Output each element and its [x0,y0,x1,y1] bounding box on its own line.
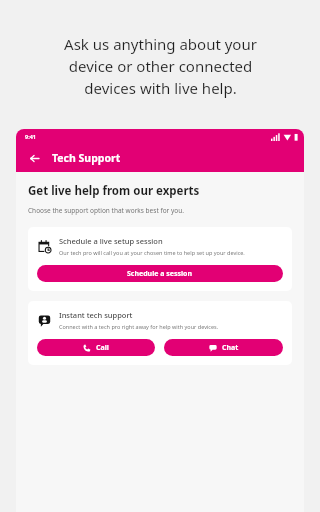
staticText: Get live help from our experts [28,183,200,199]
button[interactable]: Call [37,339,155,356]
staticText: Our tech pro will call you at your chose… [59,249,245,256]
staticText: Call [96,343,109,353]
button[interactable]: Chat [164,339,283,356]
staticText: Schedule a live setup session [59,236,163,246]
button[interactable]: Schedule a session [37,265,283,282]
staticText: Chat [222,343,239,353]
staticText: Tech Support [52,151,121,165]
staticText: Schedule a session [127,269,193,279]
staticText: Instant tech support [59,310,133,320]
button[interactable]: Schedule a live setup session [28,227,292,291]
staticText: Ask us anything about your device or oth… [64,34,257,99]
staticText: Connect with a tech pro right away for h… [59,323,219,330]
button[interactable]: Instant tech support [28,301,292,365]
staticText: Choose the support option that works bes… [28,206,184,215]
button[interactable]: Back [27,151,41,165]
staticText: 9:41 [25,133,36,140]
